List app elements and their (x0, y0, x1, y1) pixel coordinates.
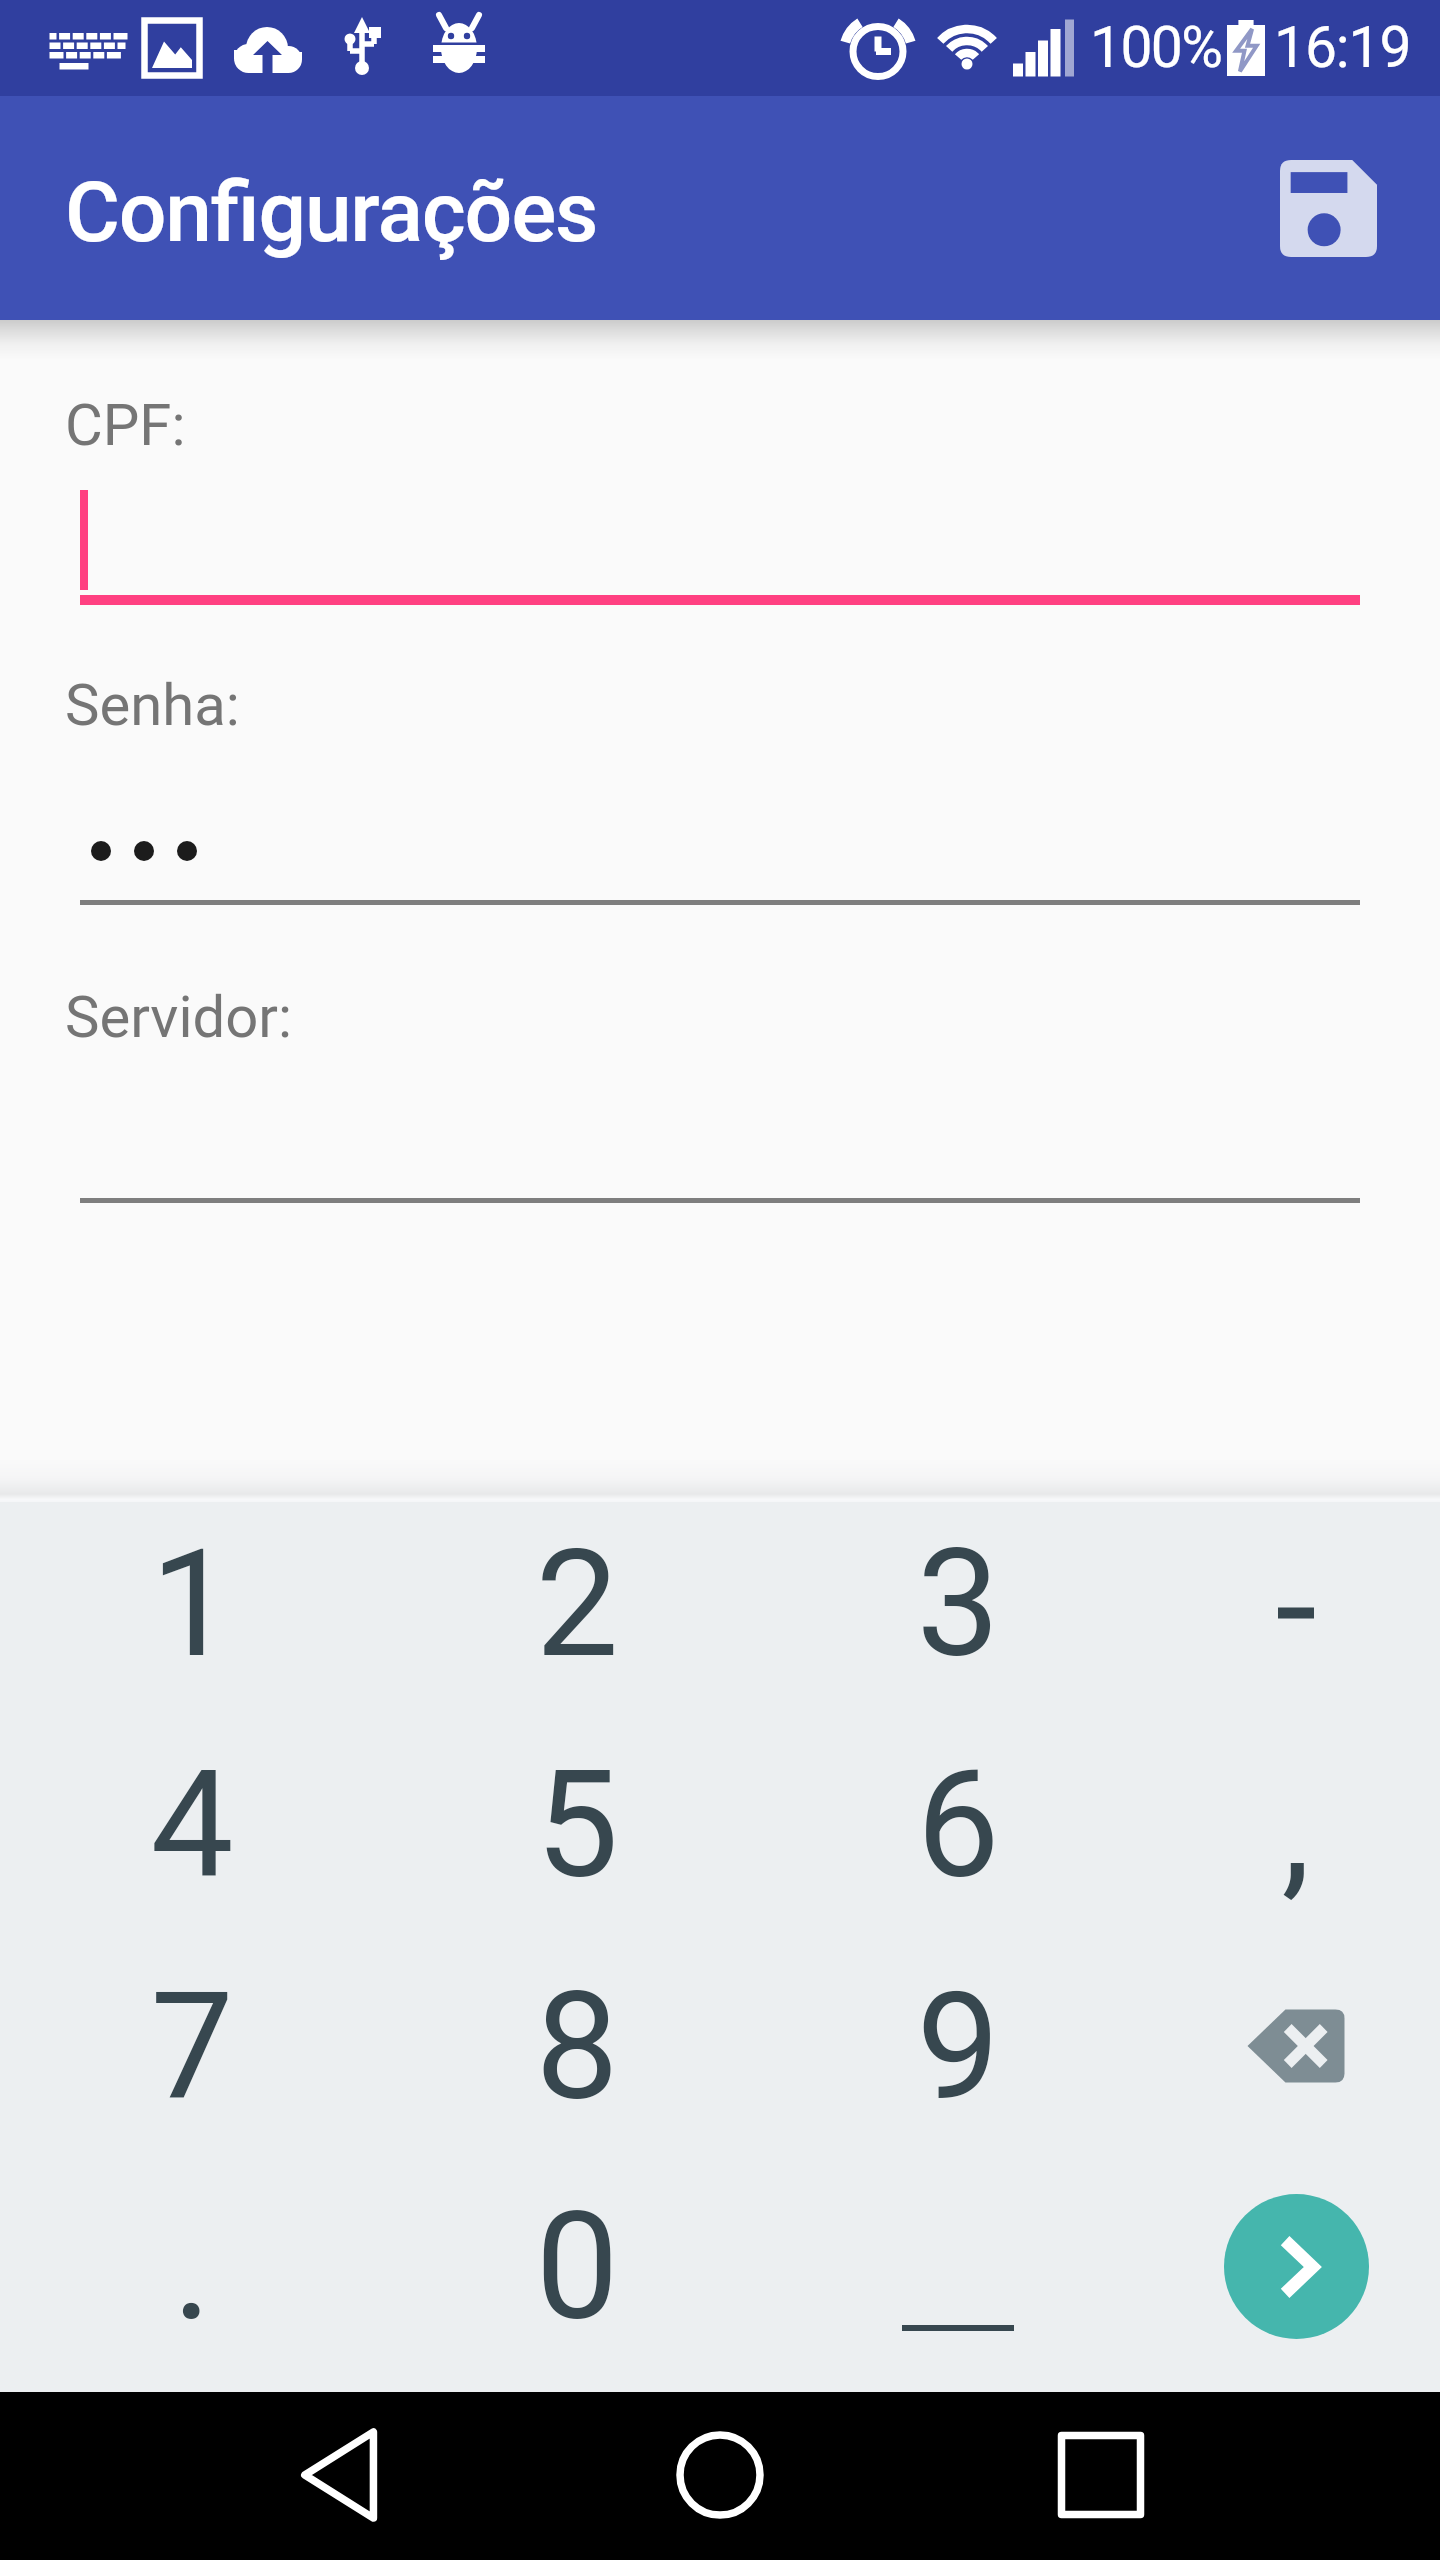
staticText: 0 (535, 2181, 619, 2354)
button[interactable]: 6 (858, 1715, 1058, 1935)
button[interactable]: 8 (477, 1937, 677, 2157)
button[interactable]: Salvar (1256, 136, 1400, 280)
staticText: 8 (535, 1961, 619, 2134)
button[interactable]: 9 (858, 1937, 1058, 2157)
button[interactable]: 1 (92, 1494, 292, 1714)
button[interactable] (80, 460, 1360, 610)
button[interactable]: 3 (858, 1494, 1058, 1714)
staticText: 1 (150, 1518, 234, 1691)
button[interactable]: Voltar (270, 2405, 410, 2545)
button[interactable]: 0 (477, 2157, 677, 2377)
button[interactable]: 7 (92, 1937, 292, 2157)
staticText: Servidor: (65, 983, 293, 1051)
button[interactable] (80, 1100, 1360, 1210)
staticText: CPF: (65, 391, 186, 459)
staticText: Configurações (65, 163, 598, 261)
staticText: . (172, 2181, 212, 2354)
button[interactable]: Recentes (1031, 2405, 1171, 2545)
button[interactable]: Sublinhado (858, 2238, 1058, 2418)
staticText: 6 (916, 1739, 1000, 1912)
button[interactable]: , (1196, 1718, 1396, 1938)
button[interactable]: Apagar (1196, 1956, 1396, 2136)
staticText: 4 (150, 1739, 234, 1912)
button[interactable]: 4 (92, 1715, 292, 1935)
button[interactable]: 5 (477, 1715, 677, 1935)
staticText: 16:19 (1274, 14, 1411, 81)
staticText: , (1281, 1742, 1311, 1915)
staticText: 5 (535, 1739, 619, 1912)
button[interactable]: . (92, 2157, 292, 2377)
staticText: Senha: (65, 671, 240, 739)
button[interactable]: 2 (477, 1494, 677, 1714)
staticText: 9 (916, 1961, 1000, 2134)
button[interactable]: Traço (1196, 1523, 1396, 1703)
staticText: 100% (1090, 14, 1222, 81)
button[interactable] (80, 800, 1360, 910)
button[interactable]: Avançar (1224, 2194, 1369, 2339)
staticText: 3 (916, 1518, 1000, 1691)
staticText: 2 (535, 1518, 619, 1691)
staticText: 7 (150, 1961, 234, 2134)
button[interactable]: Início (650, 2405, 790, 2545)
